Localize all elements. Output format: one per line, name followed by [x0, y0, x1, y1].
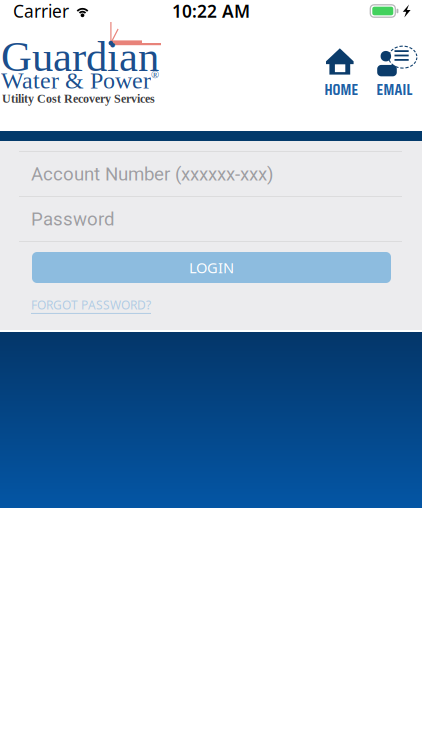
- staticText: Account Number (xxxxxx-xxx): [31, 163, 273, 185]
- button[interactable]: Account Number (xxxxxx-xxx): [0, 152, 422, 196]
- staticText: HOME: [324, 77, 358, 102]
- staticText: ®: [151, 69, 159, 81]
- staticText: 10:22 AM: [172, 0, 250, 22]
- staticText: Utility Cost Recovery Services: [2, 92, 155, 105]
- staticText: Password: [31, 208, 115, 230]
- button[interactable]: HOME: [320, 44, 362, 98]
- staticText: LOGIN: [189, 258, 234, 277]
- staticText: Carrier: [13, 0, 69, 22]
- button[interactable]: LOGIN: [32, 252, 391, 283]
- button[interactable]: EMAIL: [370, 44, 420, 98]
- button[interactable]: Password: [0, 197, 422, 241]
- staticText: Water & Power: [1, 67, 151, 94]
- staticText: Guardian: [1, 33, 159, 80]
- staticText: FORGOT PASSWORD?: [31, 297, 151, 313]
- button[interactable]: FORGOT PASSWORD?: [31, 297, 151, 314]
- staticText: EMAIL: [376, 77, 412, 102]
